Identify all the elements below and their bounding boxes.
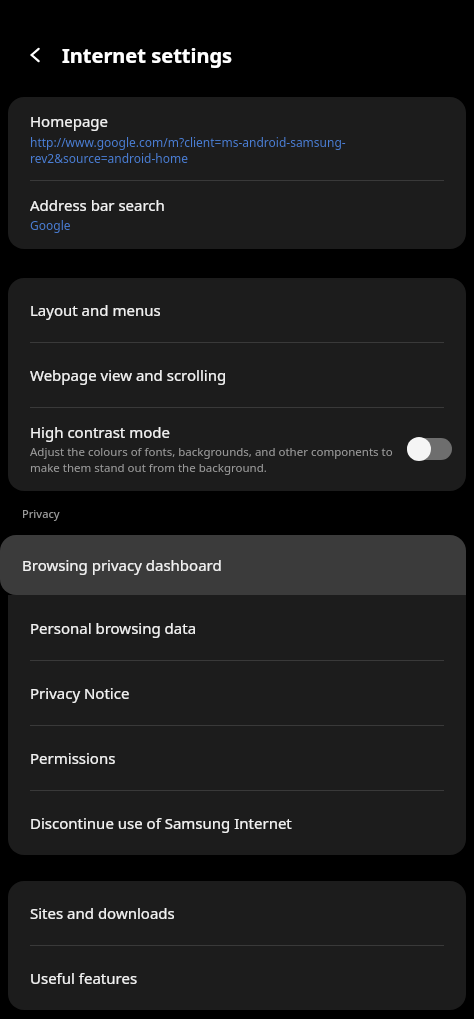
button[interactable]: Homepage — [8, 97, 466, 180]
staticText: Useful features — [30, 968, 138, 988]
button[interactable]: Useful features — [8, 946, 466, 1010]
staticText: Personal browsing data — [30, 618, 197, 638]
staticText: Sites and downloads — [30, 903, 175, 923]
button[interactable]: Layout and menus — [8, 278, 466, 342]
button[interactable]: Webpage view and scrolling — [8, 343, 466, 407]
staticText: Layout and menus — [30, 300, 161, 320]
staticText: Browsing privacy dashboard — [22, 555, 222, 575]
staticText: Address bar search — [30, 195, 165, 215]
staticText: Permissions — [30, 748, 116, 768]
staticText: Privacy Notice — [30, 683, 130, 703]
staticText: Homepage — [30, 111, 109, 131]
button[interactable]: Address bar search — [8, 181, 466, 249]
staticText: Discontinue use of Samsung Internet — [30, 813, 292, 833]
button[interactable]: High contrast mode toggle, off — [407, 436, 452, 462]
button[interactable]: Navigate up — [14, 33, 58, 77]
staticText: Webpage view and scrolling — [30, 365, 227, 385]
staticText: http://www.google.com/m?client=ms-androi… — [30, 134, 450, 166]
button[interactable]: Browsing privacy dashboard — [0, 535, 466, 595]
button[interactable]: Permissions — [8, 726, 466, 790]
staticText: High contrast mode — [30, 422, 170, 442]
staticText: Google — [30, 217, 71, 233]
button[interactable]: High contrast mode — [8, 408, 466, 491]
button[interactable]: Privacy Notice — [8, 661, 466, 725]
staticText: Privacy — [22, 506, 60, 521]
button[interactable]: Personal browsing data — [8, 595, 466, 660]
staticText: Adjust the colours of fonts, backgrounds… — [30, 444, 397, 475]
button[interactable]: Sites and downloads — [8, 881, 466, 945]
staticText: Internet settings — [62, 42, 233, 69]
button[interactable]: Discontinue use of Samsung Internet — [8, 791, 466, 855]
